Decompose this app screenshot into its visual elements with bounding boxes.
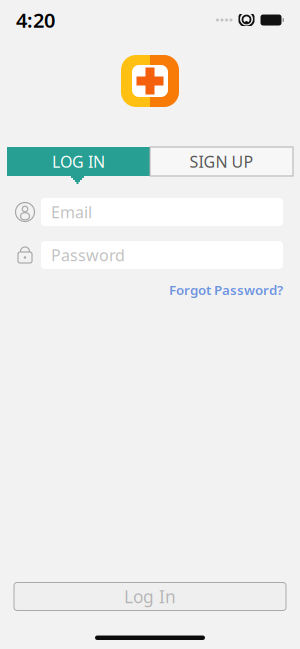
staticText: LOG IN bbox=[52, 151, 105, 172]
staticText: Password bbox=[51, 244, 125, 266]
staticText: 4:20 bbox=[16, 7, 55, 33]
button[interactable]: Forgot Password? bbox=[169, 278, 283, 302]
button[interactable]: LOG IN bbox=[7, 147, 150, 176]
button[interactable]: SIGN UP bbox=[150, 147, 293, 176]
staticText: Log In bbox=[124, 585, 176, 608]
staticText: SIGN UP bbox=[189, 151, 253, 172]
staticText: Forgot Password? bbox=[169, 281, 283, 299]
button[interactable]: Log In bbox=[14, 582, 286, 610]
staticText: Email bbox=[51, 201, 92, 223]
